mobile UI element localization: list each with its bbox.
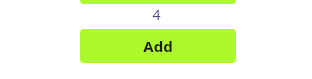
- staticText: 4: [152, 5, 161, 24]
- button[interactable]: Add: [80, 29, 236, 63]
- button[interactable]: Increase quantity: [80, 0, 236, 4]
- staticText: Add: [143, 36, 173, 56]
